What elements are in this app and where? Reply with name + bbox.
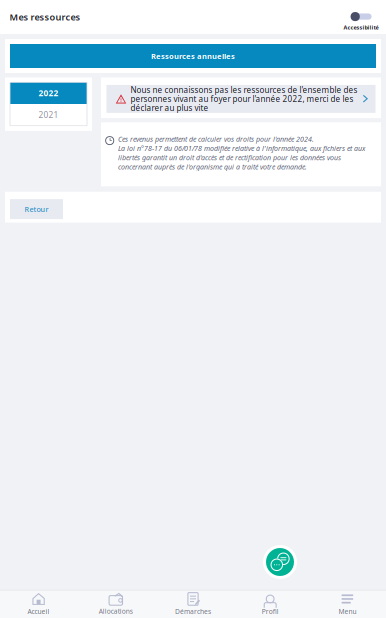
staticText: Ressources annuelles [151, 51, 235, 61]
button[interactable]: Ressources annuelles [10, 44, 376, 68]
staticText: Profil [262, 607, 279, 616]
button[interactable]: 2022 [10, 82, 87, 104]
staticText: Mes ressources [9, 11, 80, 23]
button[interactable]: Nous ne connaissons pas les ressources d… [101, 77, 381, 118]
staticText: Retour [24, 204, 48, 214]
staticText: Accueil [28, 607, 50, 616]
button[interactable]: Démarches [154, 590, 232, 618]
button[interactable]: Retour [10, 199, 63, 219]
button[interactable]: Profil [232, 590, 309, 618]
staticText: Allocations [99, 607, 133, 616]
button[interactable]: Allocations [77, 590, 154, 618]
staticText: Démarches [175, 607, 211, 616]
button[interactable]: 2021 [10, 104, 87, 126]
staticText: Accessibilité [344, 24, 379, 31]
staticText: Nous ne connaissons pas les ressources d… [130, 85, 357, 112]
button[interactable]: Aide et contact [263, 545, 297, 579]
staticText: Ces revenus permettent de calculer vos d… [118, 134, 365, 171]
button[interactable]: Accueil [0, 590, 77, 618]
button[interactable]: Menu [309, 590, 386, 618]
staticText: 2022 [38, 87, 58, 99]
button[interactable]: Accessibilité [344, 7, 386, 27]
staticText: 2021 [38, 109, 58, 120]
staticText: Menu [338, 607, 356, 616]
